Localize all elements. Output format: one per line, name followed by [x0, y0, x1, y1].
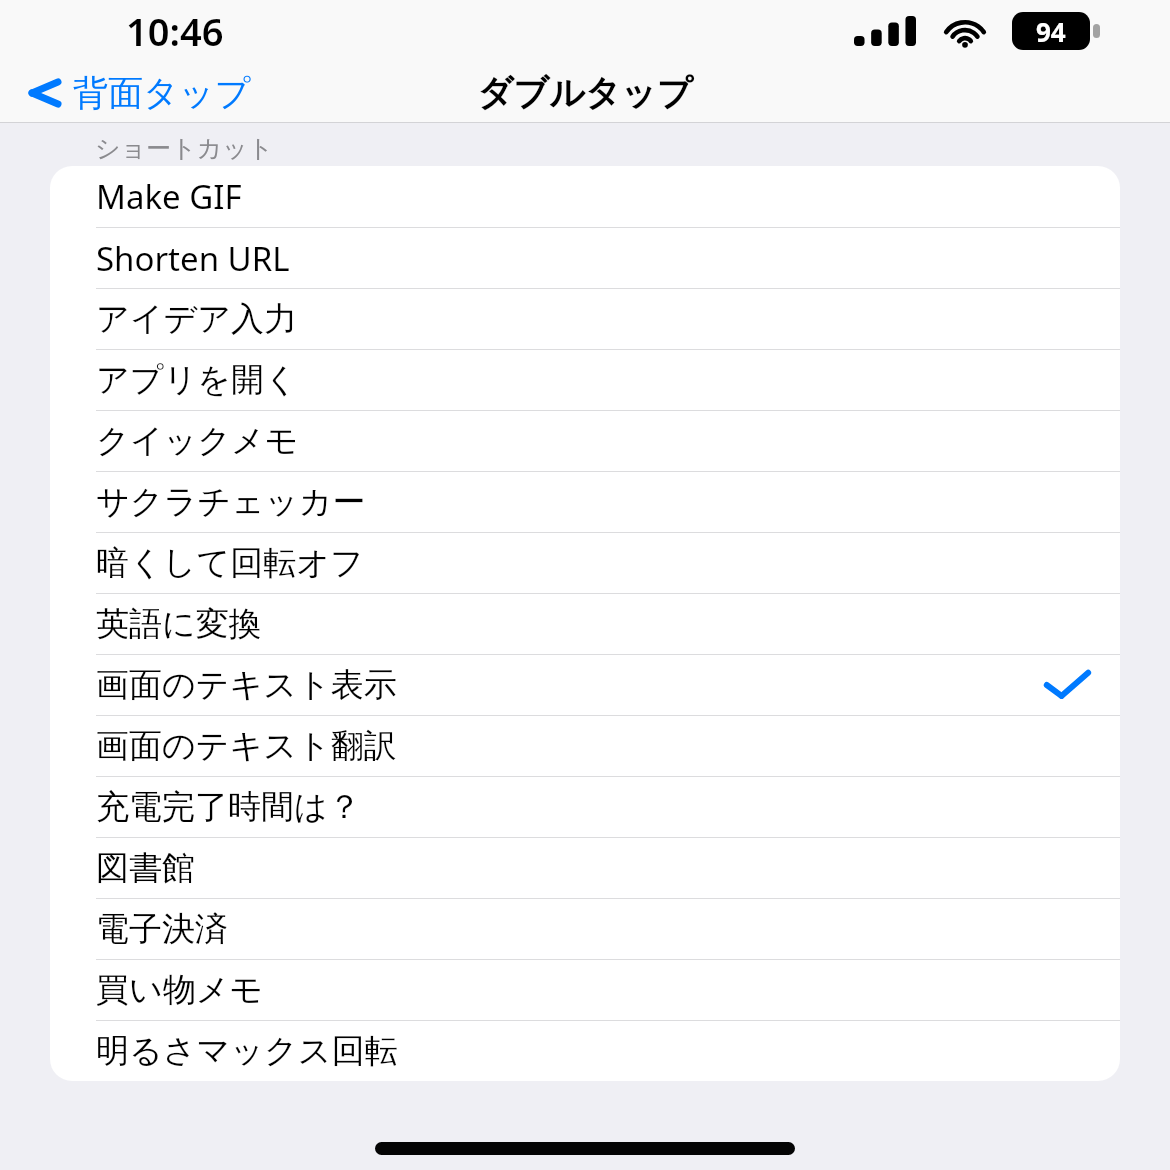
staticText: 10:46 [126, 5, 224, 57]
button[interactable]: Make GIF [50, 166, 1120, 227]
staticText: ダブルタップ [0, 71, 1170, 115]
staticText: アプリを開く [96, 359, 298, 401]
button[interactable]: 図書館 [50, 837, 1120, 898]
staticText: 明るさマックス回転 [96, 1030, 398, 1072]
staticText: 充電完了時間は？ [96, 786, 361, 828]
staticText: 画面のテキスト翻訳 [96, 725, 397, 767]
staticText: クイックメモ [96, 420, 299, 462]
staticText: 図書館 [96, 847, 195, 889]
staticText: Make GIF [96, 174, 242, 219]
staticText: ショートカット [95, 133, 274, 164]
staticText: アイデア入力 [96, 298, 298, 340]
staticText: Shorten URL [96, 236, 290, 281]
button[interactable]: 充電完了時間は？ [50, 776, 1120, 837]
staticText: 画面のテキスト表示 [96, 664, 397, 706]
staticText: 買い物メモ [96, 969, 264, 1011]
staticText: 背面タップ [73, 71, 251, 115]
button[interactable]: サクラチェッカー [50, 471, 1120, 532]
button[interactable]: 買い物メモ [50, 959, 1120, 1020]
button[interactable]: 電子決済 [50, 898, 1120, 959]
button[interactable]: 明るさマックス回転 [50, 1020, 1120, 1081]
button[interactable]: 画面のテキスト翻訳 [50, 715, 1120, 776]
button[interactable]: クイックメモ [50, 410, 1120, 471]
staticText: サクラチェッカー [96, 481, 366, 523]
button[interactable]: 背面タップ [22, 67, 257, 119]
staticText: 電子決済 [96, 908, 228, 950]
staticText: 94 [1036, 14, 1066, 49]
button[interactable]: Shorten URL [50, 227, 1120, 288]
button[interactable]: 画面のテキスト表示 [50, 654, 1120, 715]
staticText: 英語に変換 [96, 603, 262, 645]
button[interactable]: 暗くして回転オフ [50, 532, 1120, 593]
staticText: 暗くして回転オフ [96, 542, 364, 584]
other: Selected [1044, 668, 1090, 702]
button[interactable]: 英語に変換 [50, 593, 1120, 654]
button[interactable]: アイデア入力 [50, 288, 1120, 349]
button[interactable]: アプリを開く [50, 349, 1120, 410]
